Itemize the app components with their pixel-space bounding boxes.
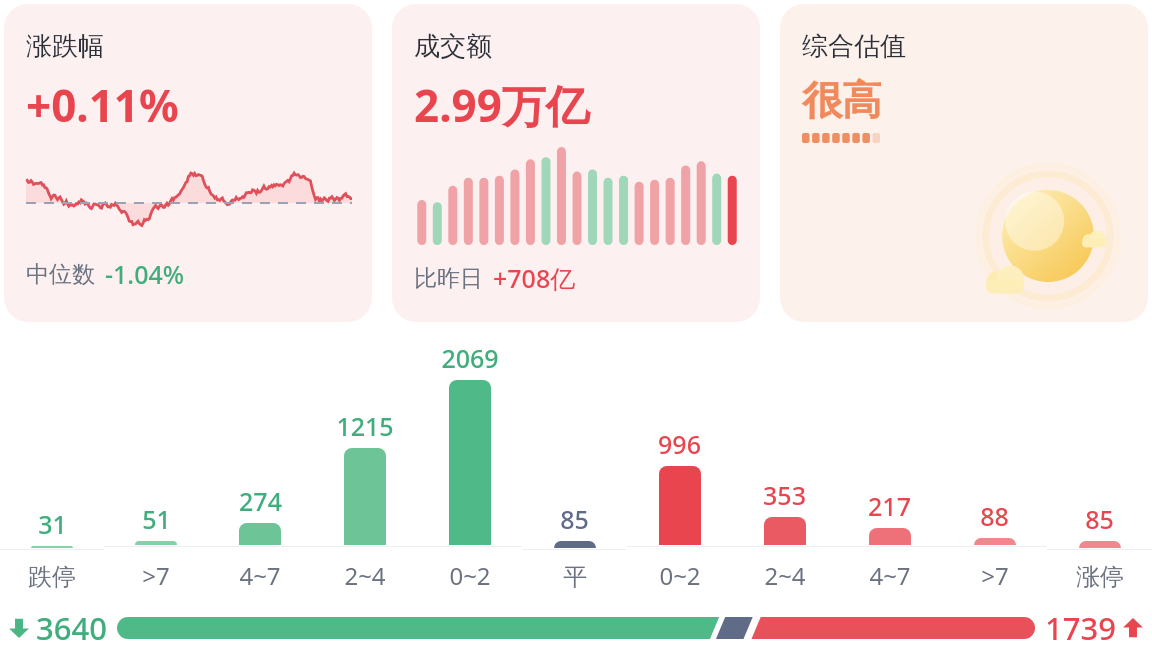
button[interactable]: 996: [627, 340, 732, 596]
staticText: 2~4: [344, 559, 386, 592]
button[interactable]: 综合估值: [780, 4, 1148, 322]
staticText: 88: [980, 499, 1009, 533]
button[interactable]: 217: [837, 340, 942, 596]
staticText: 4~7: [869, 559, 911, 592]
staticText: 85: [1085, 502, 1114, 536]
staticText: 4~7: [239, 559, 281, 592]
button[interactable]: 1215: [312, 340, 417, 596]
staticText: 51: [142, 502, 171, 536]
staticText: >7: [142, 559, 170, 592]
staticText: 2069: [441, 341, 499, 375]
staticText: 平: [563, 562, 587, 592]
other: Down: [8, 617, 30, 639]
button[interactable]: 85: [522, 340, 627, 596]
staticText: 很高: [802, 75, 882, 125]
staticText: 中位数: [26, 260, 95, 289]
button[interactable]: Down: [8, 602, 1144, 654]
button[interactable]: 88: [942, 340, 1047, 596]
other: Up: [1122, 617, 1144, 639]
staticText: 996: [658, 427, 701, 461]
button[interactable]: 85: [1047, 340, 1152, 596]
button[interactable]: 353: [732, 340, 837, 596]
staticText: 成交额: [414, 30, 492, 63]
staticText: 综合估值: [802, 30, 906, 63]
staticText: 涨跌幅: [26, 30, 104, 63]
staticText: 0~2: [659, 559, 701, 592]
button[interactable]: 成交额: [392, 4, 760, 322]
staticText: >7: [981, 559, 1009, 592]
button[interactable]: 274: [208, 340, 312, 596]
staticText: +0.11%: [26, 75, 179, 135]
staticText: 353: [763, 478, 806, 512]
button[interactable]: 涨跌幅: [4, 4, 372, 322]
staticText: 2.99万亿: [414, 75, 590, 135]
button[interactable]: 31: [0, 340, 104, 596]
staticText: 85: [560, 502, 589, 536]
staticText: 涨停: [1076, 562, 1124, 592]
staticText: +708亿: [493, 261, 576, 295]
staticText: 比昨日: [414, 264, 483, 293]
staticText: 2~4: [764, 559, 806, 592]
staticText: 1215: [336, 409, 394, 443]
staticText: 跌停: [28, 562, 76, 592]
other: Valuation sun: [974, 162, 1122, 310]
staticText: 274: [239, 484, 282, 518]
staticText: 3640: [36, 607, 107, 649]
staticText: 1739: [1045, 607, 1116, 649]
staticText: -1.04%: [105, 257, 185, 291]
button[interactable]: 2069: [417, 340, 522, 596]
staticText: 217: [868, 489, 911, 523]
button[interactable]: 51: [104, 340, 208, 596]
staticText: 0~2: [449, 559, 491, 592]
staticText: 31: [38, 507, 67, 541]
